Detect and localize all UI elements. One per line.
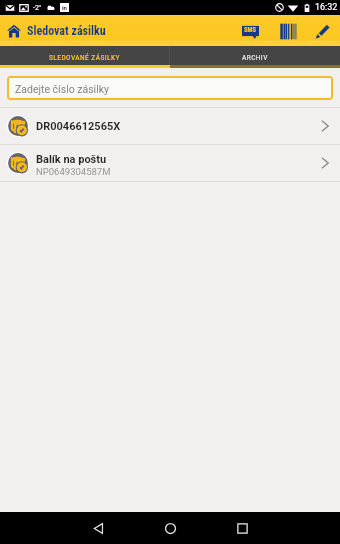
button[interactable]: Balík na poštu	[0, 144, 340, 181]
button[interactable]: Home	[7, 24, 21, 38]
staticText: NP0649304587M	[36, 166, 111, 177]
staticText: DR0046612565X	[36, 120, 121, 133]
button[interactable]: Home	[156, 514, 184, 542]
staticText: 16:32	[315, 2, 338, 13]
staticText: ARCHIV	[242, 53, 268, 62]
staticText: Sledovat zásilku	[27, 24, 106, 38]
staticText: SMS	[244, 26, 256, 34]
staticText: -2°	[33, 4, 42, 12]
staticText: in	[62, 4, 67, 11]
button[interactable]: ARCHIV	[170, 46, 340, 65]
button[interactable]: Send SMS	[236, 17, 264, 45]
button[interactable]: Scan barcode	[274, 17, 302, 45]
button[interactable]: Back	[84, 514, 112, 542]
button[interactable]: Zadejte číslo zásilky	[7, 76, 333, 100]
button[interactable]: DR0046612565X	[0, 107, 340, 144]
staticText: Balík na poštu	[36, 153, 107, 166]
button[interactable]: Recent apps	[228, 514, 256, 542]
button[interactable]: SLEDOVANÉ ZÁSILKY	[0, 46, 169, 65]
staticText: SLEDOVANÉ ZÁSILKY	[49, 53, 120, 62]
staticText: Zadejte číslo zásilky	[15, 83, 110, 95]
button[interactable]: Edit	[308, 17, 336, 45]
